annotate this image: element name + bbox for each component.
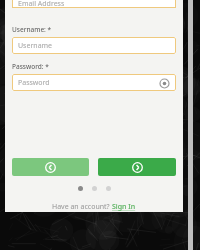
button[interactable]: Sign In bbox=[112, 202, 136, 212]
button[interactable]: Page 1 bbox=[78, 186, 83, 191]
button[interactable]: Username bbox=[12, 37, 176, 54]
button[interactable]: Page 3 bbox=[106, 186, 111, 191]
staticText: Password: * bbox=[12, 62, 49, 71]
staticText: Email Address bbox=[18, 0, 65, 9]
button[interactable]: Show password bbox=[158, 77, 170, 89]
staticText: Username: * bbox=[12, 25, 52, 34]
staticText: Sign In bbox=[112, 202, 136, 212]
staticText: Have an account? bbox=[52, 202, 112, 212]
button[interactable]: Next bbox=[98, 158, 176, 176]
button[interactable]: Page 2 bbox=[92, 186, 97, 191]
button[interactable]: Password bbox=[12, 74, 176, 91]
staticText: Username bbox=[18, 41, 53, 51]
button[interactable]: Email Address bbox=[12, 0, 176, 8]
staticText: Password bbox=[18, 78, 50, 88]
button[interactable]: Previous bbox=[12, 158, 89, 176]
